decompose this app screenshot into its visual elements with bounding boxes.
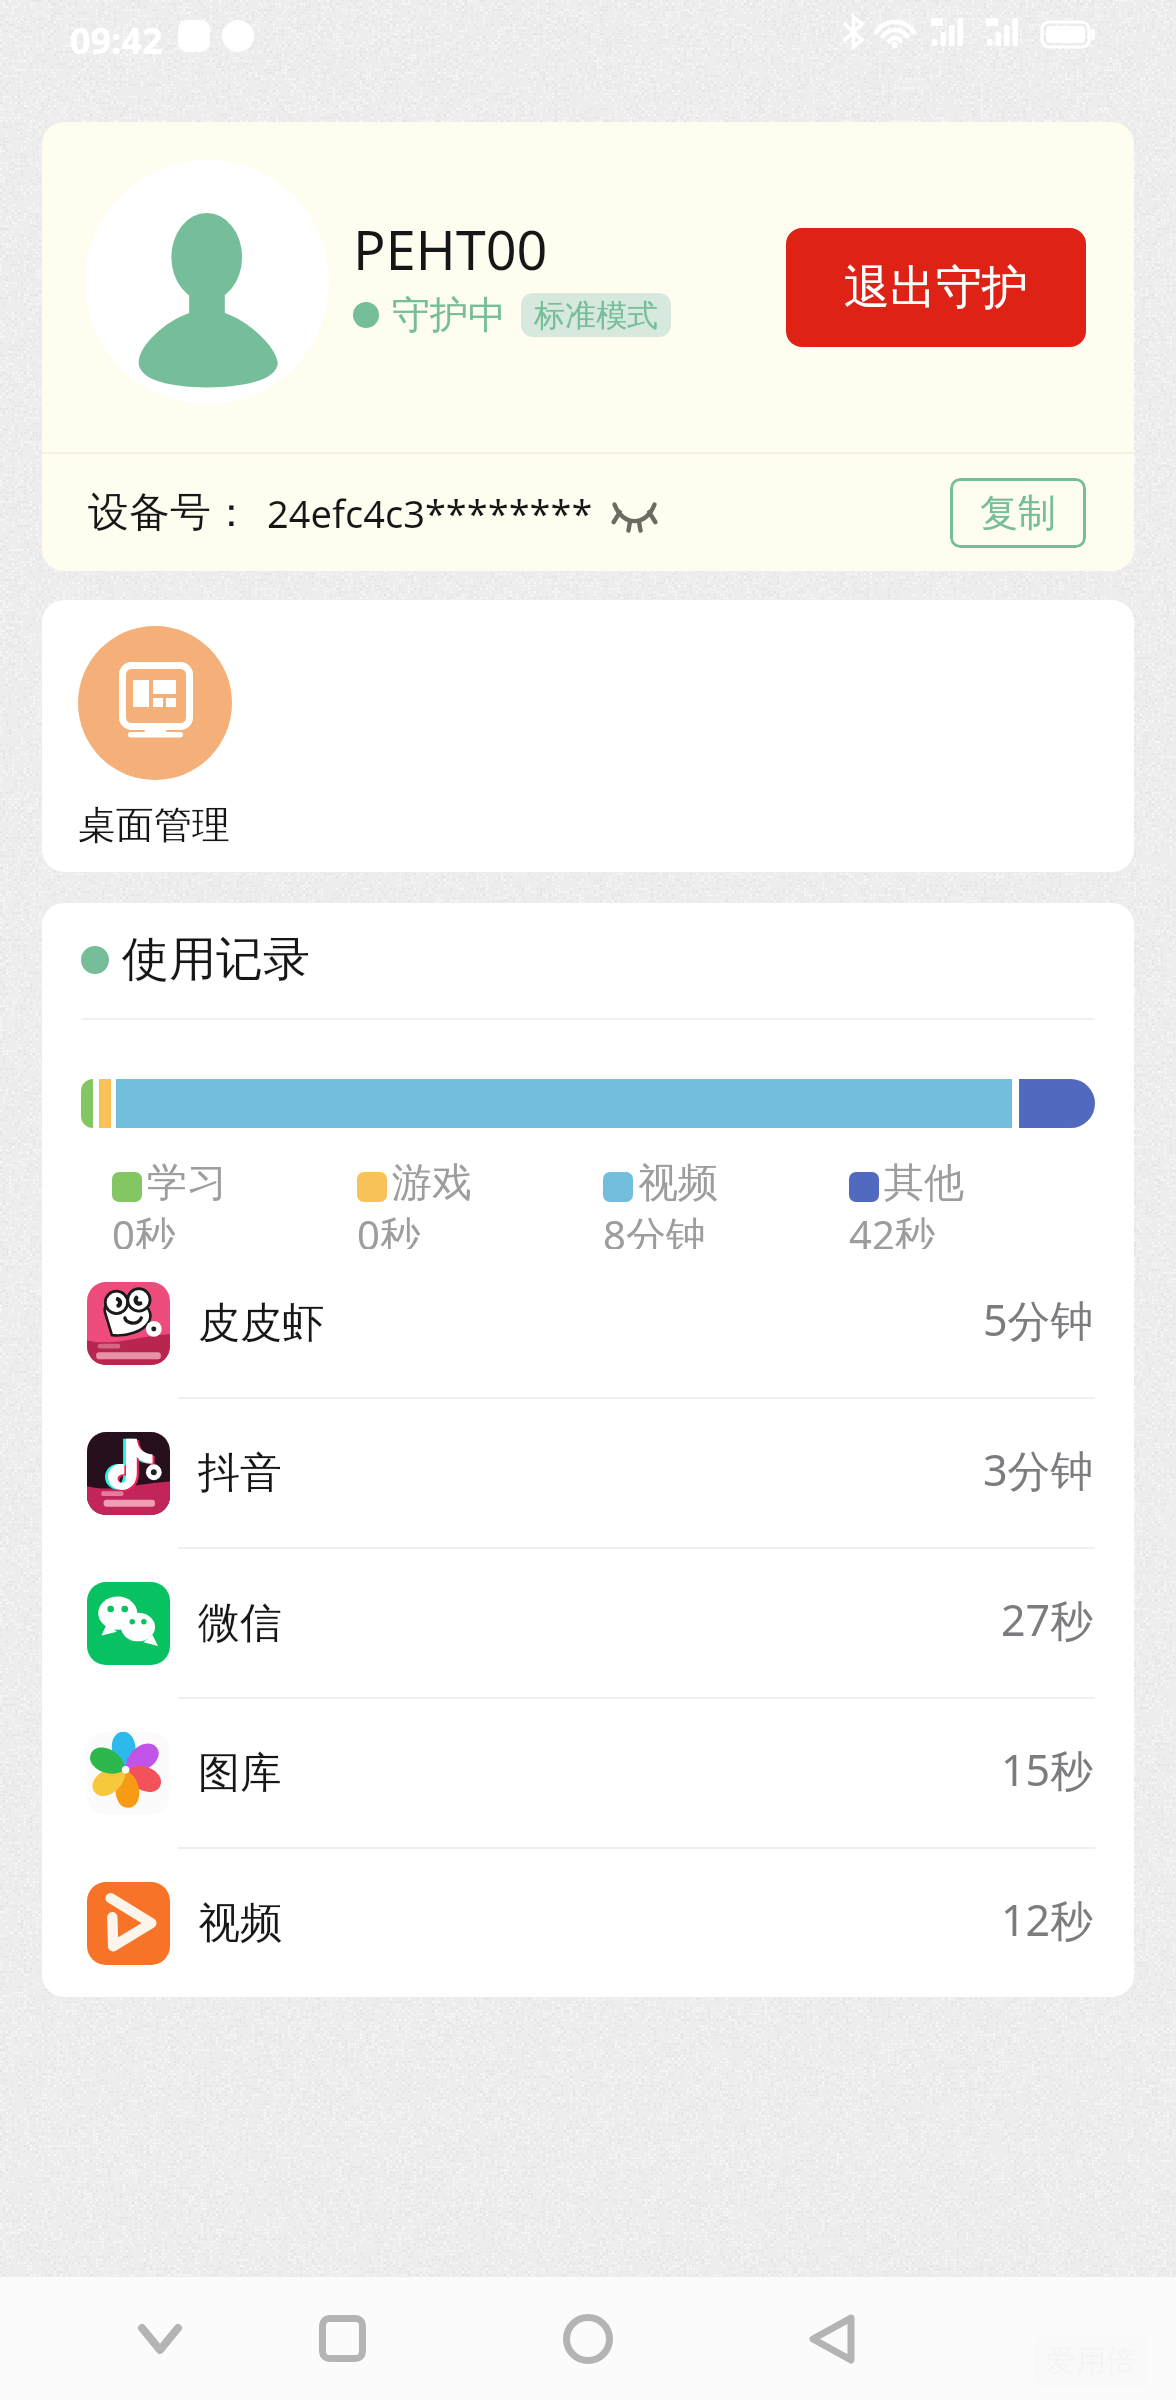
staticText: 抖音 [198,1447,282,1500]
button[interactable]: 复制 [950,478,1086,548]
staticText: 27秒 [1001,1590,1094,1649]
button[interactable]: 退出守护 [786,228,1086,347]
button[interactable]: 视频 [42,1849,1134,1997]
staticText: 标准模式 [534,296,658,335]
staticText: 视频 [638,1157,718,1207]
button[interactable]: Show device id [597,488,671,538]
button[interactable]: 皮皮虾 [42,1249,1134,1397]
staticText: 使用记录 [122,930,310,989]
staticText: 15秒 [1001,1740,1094,1799]
button[interactable]: 微信 [42,1549,1134,1697]
staticText: 5分钟 [983,1290,1094,1349]
button[interactable]: Back [772,2277,892,2400]
button[interactable]: Home [528,2277,648,2400]
staticText: 微信 [198,1597,282,1650]
staticText: 24efc4c3******** [267,487,593,539]
staticText: 09:42 [70,16,163,65]
staticText: 3分钟 [983,1440,1094,1499]
staticText: 0秒 [112,1207,175,1249]
staticText: 0秒 [357,1207,420,1249]
button[interactable]: 桌面管理 [78,626,232,849]
staticText: 其他 [884,1157,964,1207]
button[interactable]: 抖音 [42,1399,1134,1547]
staticText: 游戏 [392,1157,472,1207]
staticText: 皮皮虾 [198,1297,324,1350]
staticText: 退出守护 [844,259,1028,317]
staticText: 桌面管理 [78,801,230,849]
staticText: 复制 [980,489,1056,537]
staticText: 学习 [147,1157,227,1207]
button[interactable]: Hide keyboard [100,2277,220,2400]
staticText: 守护中 [392,291,506,339]
staticText: 视频 [198,1897,282,1950]
staticText: 8分钟 [603,1207,706,1249]
staticText: 设备号： [88,487,252,539]
staticText: 图库 [198,1747,282,1800]
button[interactable]: 图库 [42,1699,1134,1847]
staticText: PEHT00 [353,212,548,286]
staticText: 12秒 [1001,1890,1094,1949]
button[interactable]: Recent apps [282,2277,402,2400]
staticText: 42秒 [849,1207,935,1249]
